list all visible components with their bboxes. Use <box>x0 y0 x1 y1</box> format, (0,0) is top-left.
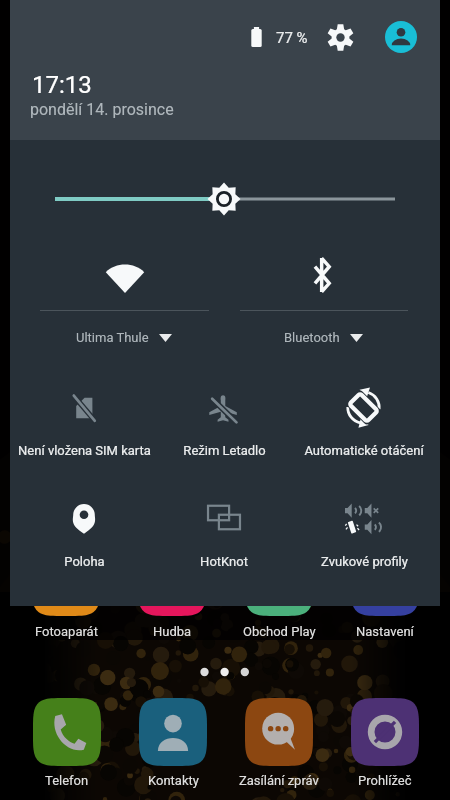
button[interactable] <box>154 384 294 464</box>
button[interactable] <box>294 384 434 464</box>
staticText: Bluetooth <box>284 330 340 345</box>
staticText: Automatické otáčení <box>304 443 424 458</box>
button[interactable]: Brightness <box>10 179 440 219</box>
staticText: Nastavení <box>356 624 414 639</box>
button[interactable] <box>14 384 154 464</box>
staticText: pondělí 14. prosince <box>30 100 174 119</box>
staticText: Zvukové profily <box>321 554 408 569</box>
staticText: Fotoaparát <box>35 624 98 639</box>
button[interactable]: Zasílání zpráv <box>223 696 335 796</box>
button[interactable] <box>25 250 225 345</box>
staticText: Hudba <box>153 624 192 639</box>
staticText: 77 % <box>276 29 308 47</box>
button[interactable] <box>14 494 154 574</box>
staticText: Není vložena SIM karta <box>18 443 151 458</box>
staticText: HotKnot <box>200 554 248 569</box>
button[interactable] <box>154 494 294 574</box>
button[interactable]: Obchod Play <box>223 548 335 668</box>
staticText: Telefon <box>45 773 89 788</box>
staticText: 17:13 <box>32 71 92 99</box>
staticText: Poloha <box>64 554 105 569</box>
button[interactable]: Telefon <box>11 696 123 796</box>
button[interactable]: Hudba <box>116 548 228 668</box>
staticText: Ultima Thule <box>76 330 149 345</box>
staticText: Prohlížeč <box>358 773 412 788</box>
staticText: Režim Letadlo <box>183 443 266 458</box>
staticText: Kontakty <box>148 773 199 788</box>
button[interactable]: User profile <box>382 18 420 56</box>
button[interactable]: Prohlížeč <box>329 696 441 796</box>
button[interactable]: Kontakty <box>117 696 229 796</box>
staticText: Obchod Play <box>243 624 316 639</box>
button[interactable] <box>225 250 425 345</box>
button[interactable]: Fotoaparát <box>10 548 122 668</box>
button[interactable] <box>294 494 434 574</box>
button[interactable]: Nastavení <box>329 548 441 668</box>
button[interactable]: Settings <box>322 19 358 55</box>
staticText: Zasílání zpráv <box>239 773 319 788</box>
